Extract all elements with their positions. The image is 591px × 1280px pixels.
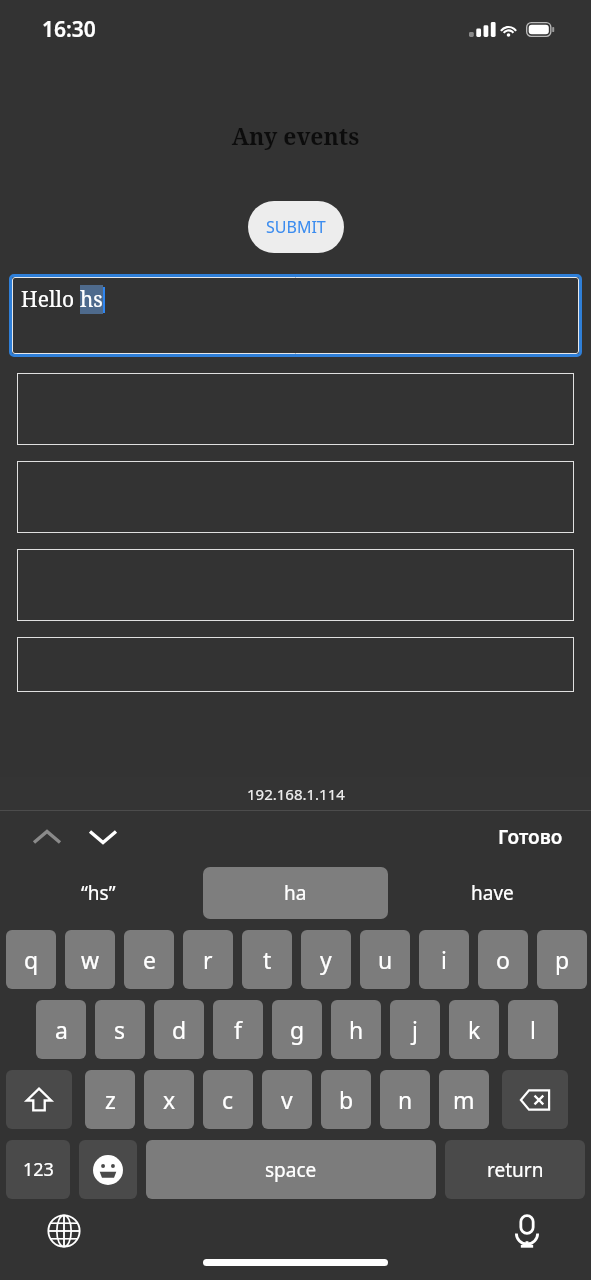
button[interactable]: e bbox=[124, 930, 174, 989]
staticText: k bbox=[468, 1014, 481, 1045]
button[interactable]: v bbox=[262, 1070, 312, 1129]
button[interactable]: a bbox=[36, 1000, 86, 1059]
staticText: l bbox=[530, 1014, 536, 1045]
button[interactable]: Previous field bbox=[28, 818, 66, 856]
button[interactable]: Dictation bbox=[507, 1211, 547, 1251]
button[interactable]: i bbox=[419, 930, 469, 989]
staticText: a bbox=[55, 1014, 68, 1045]
staticText: w bbox=[81, 944, 100, 975]
button[interactable]: Change keyboard language bbox=[44, 1211, 84, 1251]
button[interactable]: Готово bbox=[498, 824, 563, 850]
staticText: space bbox=[265, 1157, 317, 1183]
button[interactable]: have bbox=[471, 880, 514, 906]
staticText: “hs” bbox=[81, 880, 116, 906]
staticText: t bbox=[263, 944, 272, 975]
staticText: v bbox=[281, 1084, 293, 1115]
button[interactable]: SUBMIT bbox=[248, 201, 344, 253]
button[interactable]: “hs” bbox=[81, 880, 116, 906]
button[interactable]: s bbox=[95, 1000, 145, 1059]
staticText: m bbox=[453, 1084, 475, 1115]
staticText: s bbox=[114, 1014, 126, 1045]
staticText: j bbox=[412, 1014, 418, 1045]
staticText: g bbox=[290, 1014, 305, 1045]
staticText: 16:30 bbox=[42, 15, 96, 44]
staticText: o bbox=[496, 944, 510, 975]
button[interactable]: w bbox=[65, 930, 115, 989]
staticText: c bbox=[222, 1084, 234, 1115]
staticText: i bbox=[441, 944, 447, 975]
button[interactable]: g bbox=[272, 1000, 322, 1059]
button[interactable]: r bbox=[183, 930, 233, 989]
button[interactable]: 123 bbox=[6, 1140, 70, 1199]
staticText: z bbox=[105, 1084, 116, 1115]
staticText: 192.168.1.114 bbox=[247, 784, 345, 804]
staticText: p bbox=[555, 944, 570, 975]
button[interactable]: u bbox=[360, 930, 410, 989]
button[interactable]: d bbox=[154, 1000, 204, 1059]
staticText: b bbox=[339, 1084, 354, 1115]
button[interactable]: b bbox=[321, 1070, 371, 1129]
staticText: e bbox=[143, 944, 156, 975]
button[interactable] bbox=[17, 637, 574, 692]
button[interactable]: j bbox=[390, 1000, 440, 1059]
button[interactable] bbox=[17, 461, 574, 533]
button[interactable]: h bbox=[331, 1000, 381, 1059]
button[interactable] bbox=[17, 549, 574, 621]
button[interactable]: m bbox=[439, 1070, 489, 1129]
staticText: h bbox=[349, 1014, 364, 1045]
button[interactable]: y bbox=[301, 930, 351, 989]
button[interactable]: space bbox=[146, 1140, 436, 1199]
button[interactable]: o bbox=[478, 930, 528, 989]
staticText: Готово bbox=[498, 824, 563, 850]
staticText: SUBMIT bbox=[266, 216, 326, 238]
button[interactable]: p bbox=[537, 930, 587, 989]
button[interactable]: Backspace bbox=[502, 1070, 568, 1129]
staticText: n bbox=[398, 1084, 413, 1115]
staticText: y bbox=[320, 944, 332, 975]
staticText: Any events bbox=[0, 120, 591, 151]
button[interactable]: Emoji bbox=[79, 1140, 137, 1199]
button[interactable]: f bbox=[213, 1000, 263, 1059]
staticText: Hello bbox=[21, 285, 80, 314]
button[interactable]: ha bbox=[203, 867, 388, 919]
staticText: d bbox=[172, 1014, 187, 1045]
staticText: x bbox=[163, 1084, 176, 1115]
staticText: r bbox=[203, 944, 213, 975]
button[interactable]: t bbox=[242, 930, 292, 989]
button[interactable]: k bbox=[449, 1000, 499, 1059]
button[interactable]: x bbox=[144, 1070, 194, 1129]
button[interactable]: Shift bbox=[6, 1070, 72, 1129]
staticText: 123 bbox=[23, 1157, 54, 1182]
button[interactable]: q bbox=[6, 930, 56, 989]
button[interactable]: n bbox=[380, 1070, 430, 1129]
staticText: u bbox=[378, 944, 393, 975]
button[interactable]: return bbox=[445, 1140, 585, 1199]
staticText: have bbox=[471, 880, 514, 906]
staticText: ha bbox=[284, 880, 307, 906]
button[interactable]: z bbox=[85, 1070, 135, 1129]
staticText: f bbox=[234, 1014, 242, 1045]
staticText: q bbox=[24, 944, 39, 975]
button[interactable]: Next field bbox=[84, 818, 122, 856]
button[interactable] bbox=[17, 373, 574, 445]
staticText: return bbox=[487, 1157, 544, 1183]
button[interactable]: l bbox=[508, 1000, 558, 1059]
staticText: hs bbox=[80, 285, 103, 314]
button[interactable]: Hello bbox=[12, 277, 579, 354]
button[interactable]: c bbox=[203, 1070, 253, 1129]
